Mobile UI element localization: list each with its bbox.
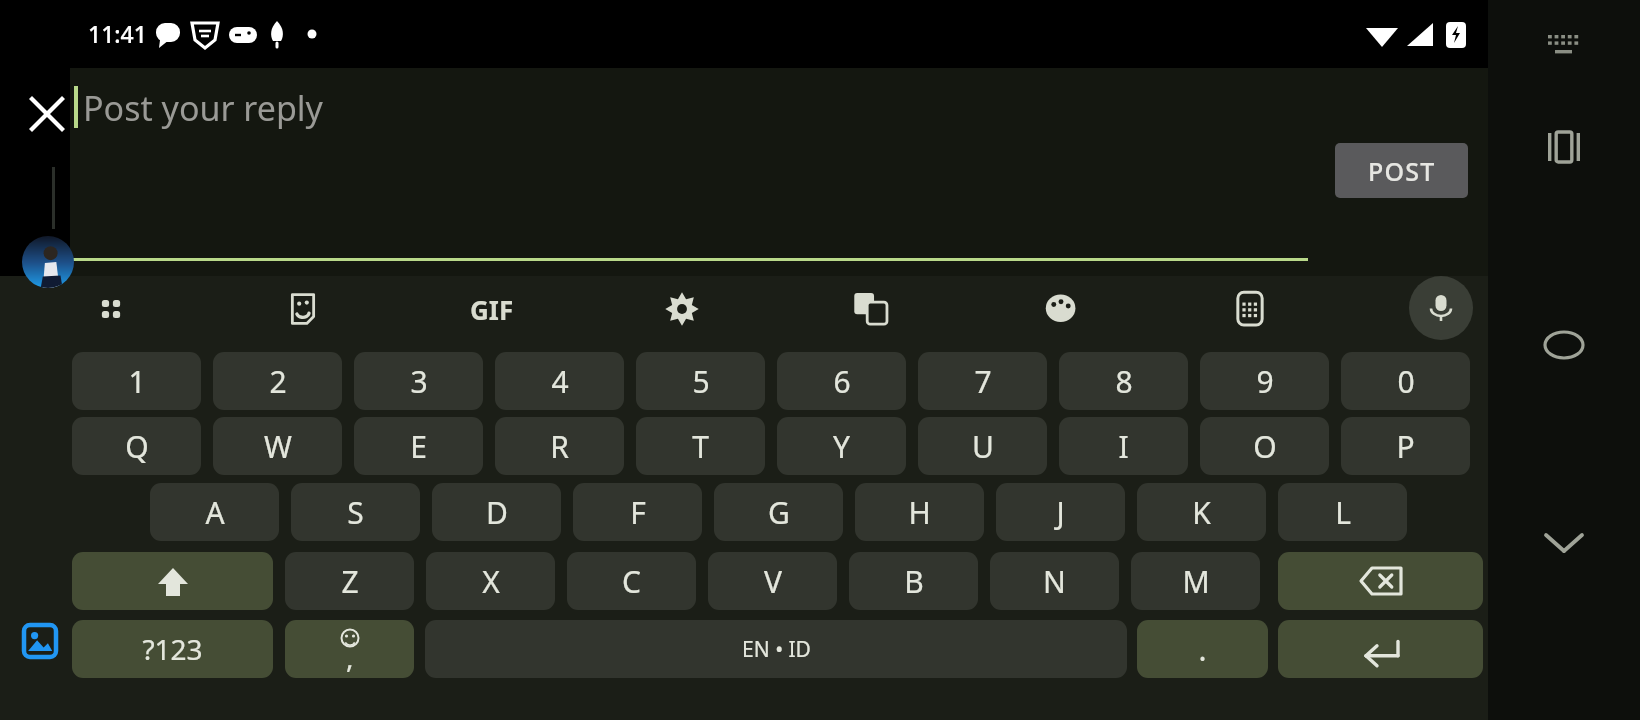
staticText: 7 — [974, 361, 992, 402]
button[interactable]: F — [573, 483, 702, 541]
staticText: O — [1253, 426, 1277, 467]
staticText: 1 — [128, 361, 146, 402]
staticText: P — [1396, 426, 1415, 467]
button[interactable]: Settings — [655, 282, 709, 336]
button[interactable]: D — [432, 483, 561, 541]
button[interactable]: Translate — [844, 282, 898, 336]
staticText: , — [346, 638, 354, 676]
button[interactable]: M — [1131, 552, 1260, 610]
button[interactable]: Profile photo — [22, 236, 74, 288]
staticText: EN • ID — [742, 635, 811, 664]
button[interactable]: S — [291, 483, 420, 541]
button[interactable]: Shift — [72, 552, 273, 610]
staticText: 5 — [692, 361, 710, 402]
staticText: . — [1198, 629, 1207, 670]
staticText: R — [550, 426, 569, 467]
staticText: 0 — [1397, 361, 1415, 402]
staticText: 4 — [551, 361, 569, 402]
button[interactable]: 5 — [636, 352, 765, 410]
staticText: Q — [125, 426, 149, 467]
button[interactable]: Hide keyboard — [1536, 20, 1592, 76]
button[interactable]: U — [918, 417, 1047, 475]
button[interactable]: K — [1137, 483, 1266, 541]
staticText: 9 — [1256, 361, 1274, 402]
button[interactable]: E — [354, 417, 483, 475]
button[interactable]: Recent apps — [1532, 115, 1596, 179]
staticText: GIF — [470, 292, 514, 327]
staticText: U — [972, 426, 994, 467]
staticText: F — [630, 492, 646, 533]
button[interactable]: Back — [1532, 511, 1596, 575]
button[interactable]: Add image — [22, 623, 58, 659]
button[interactable]: GIF — [465, 282, 519, 336]
button[interactable]: G — [714, 483, 843, 541]
staticText: S — [347, 492, 364, 533]
staticText: I — [1118, 426, 1129, 467]
staticText: T — [692, 426, 709, 467]
button[interactable]: Enter — [1278, 620, 1483, 678]
button[interactable]: Y — [777, 417, 906, 475]
staticText: 3 — [410, 361, 428, 402]
staticText: POST — [1368, 154, 1436, 188]
button[interactable]: 8 — [1059, 352, 1188, 410]
staticText: B — [904, 561, 924, 602]
button[interactable]: I — [1059, 417, 1188, 475]
button[interactable]: 1 — [72, 352, 201, 410]
button[interactable]: Home — [1532, 313, 1596, 377]
button[interactable]: 9 — [1200, 352, 1329, 410]
button[interactable]: Clipboard — [1223, 282, 1277, 336]
button[interactable]: H — [855, 483, 984, 541]
staticText: 2 — [269, 361, 287, 402]
staticText: D — [486, 492, 508, 533]
button[interactable]: Backspace — [1278, 552, 1483, 610]
button[interactable]: 3 — [354, 352, 483, 410]
staticText: Y — [833, 426, 850, 467]
staticText: X — [482, 561, 500, 602]
staticText: A — [205, 492, 225, 533]
button[interactable]: Apps — [84, 282, 138, 336]
staticText: J — [1056, 492, 1065, 533]
button[interactable]: T — [636, 417, 765, 475]
button[interactable]: B — [849, 552, 978, 610]
button[interactable]: Voice input — [1409, 276, 1473, 340]
staticText: M — [1182, 561, 1210, 602]
staticText: Post your reply — [83, 85, 323, 131]
button[interactable]: N — [990, 552, 1119, 610]
staticText: 6 — [833, 361, 851, 402]
button[interactable]: Comma — [285, 620, 414, 678]
staticText: N — [1043, 561, 1066, 602]
button[interactable]: Themes — [1034, 282, 1088, 336]
staticText: E — [410, 426, 427, 467]
staticText: G — [768, 492, 790, 533]
button[interactable]: Z — [285, 552, 414, 610]
button[interactable]: 4 — [495, 352, 624, 410]
button[interactable]: L — [1278, 483, 1407, 541]
button[interactable]: Stickers — [276, 282, 330, 336]
button[interactable]: O — [1200, 417, 1329, 475]
button[interactable]: EN • ID — [425, 620, 1127, 678]
button[interactable]: X — [426, 552, 555, 610]
button[interactable]: C — [567, 552, 696, 610]
button[interactable]: W — [213, 417, 342, 475]
button[interactable]: 2 — [213, 352, 342, 410]
button[interactable]: A — [150, 483, 279, 541]
button[interactable]: Q — [72, 417, 201, 475]
staticText: W — [264, 426, 292, 467]
staticText: 8 — [1115, 361, 1133, 402]
button[interactable]: . — [1137, 620, 1268, 678]
button[interactable]: POST — [1335, 143, 1468, 198]
button[interactable]: ?123 — [72, 620, 273, 678]
button[interactable]: 6 — [777, 352, 906, 410]
button[interactable]: V — [708, 552, 837, 610]
staticText: Z — [341, 561, 359, 602]
button[interactable]: P — [1341, 417, 1470, 475]
staticText: V — [764, 561, 782, 602]
button[interactable]: J — [996, 483, 1125, 541]
button[interactable]: R — [495, 417, 624, 475]
button[interactable]: Close — [18, 85, 76, 143]
button[interactable]: 0 — [1341, 352, 1470, 410]
staticText: 11:41 — [88, 18, 147, 49]
staticText: C — [622, 561, 641, 602]
staticText: K — [1192, 492, 1211, 533]
button[interactable]: 7 — [918, 352, 1047, 410]
